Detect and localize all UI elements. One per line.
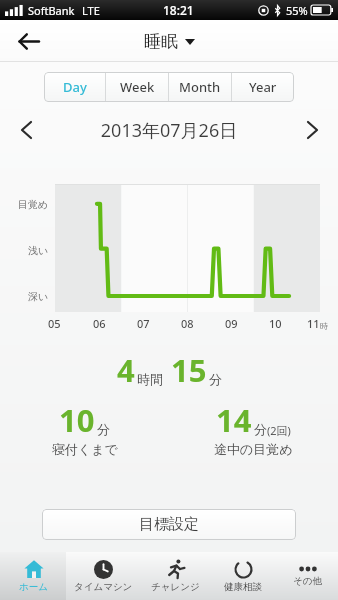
staticText: LTE [82,3,100,18]
staticText: 2013年07月26日 [42,118,296,143]
staticText: 分 [97,421,110,437]
staticText: Month [179,78,221,96]
staticText: 寝付くまで [52,441,118,457]
button[interactable]: Previous day [10,114,42,146]
staticText: (2回) [267,423,291,438]
button[interactable]: ホーム [0,552,66,600]
staticText: Day [63,78,87,96]
staticText: 健康相談 [224,581,262,593]
staticText: Week [120,78,155,96]
staticText: 55% [286,3,308,18]
staticText: チャレンジ [151,581,200,593]
staticText: 4 [117,349,135,391]
button[interactable]: チャレンジ [141,552,210,600]
staticText: 05 [48,316,61,331]
staticText: 07 [137,316,150,331]
staticText: 15 [171,349,207,391]
staticText: 途中の目覚め [214,441,293,457]
staticText: 11 [307,316,320,331]
staticText: 10 [59,399,95,441]
staticText: ホーム [19,581,48,593]
staticText: 目標設定 [139,515,199,534]
button[interactable]: Year [232,72,294,102]
button[interactable]: Month [169,72,231,102]
button[interactable]: Day [44,72,105,102]
staticText: 深い [28,290,49,303]
staticText: Year [249,78,277,96]
button[interactable]: 健康相談 [210,552,276,600]
staticText: 10 [269,316,282,331]
staticText: タイムマシン [74,581,133,593]
staticText: 時 [320,321,328,331]
staticText: 浅い [28,244,49,257]
staticText: その他 [293,575,322,587]
staticText: 分 [254,421,267,437]
staticText: 目覚め [18,198,49,211]
staticText: 08 [181,316,194,331]
staticText: 18:21 [163,2,194,18]
staticText: SoftBank [28,3,75,18]
staticText: 14 [216,399,252,441]
button[interactable]: Week [106,72,168,102]
button[interactable]: 目標設定 [42,509,296,540]
button[interactable]: Next day [296,114,328,146]
staticText: 06 [93,316,106,331]
button[interactable]: タイムマシン [66,552,141,600]
button[interactable]: Back [8,21,48,61]
staticText: 睡眠 [144,31,178,52]
staticText: 時間 [137,371,163,387]
staticText: 09 [225,316,238,331]
staticText: 分 [209,371,222,387]
button[interactable]: その他 [276,552,338,600]
button[interactable]: 睡眠 [144,31,195,52]
